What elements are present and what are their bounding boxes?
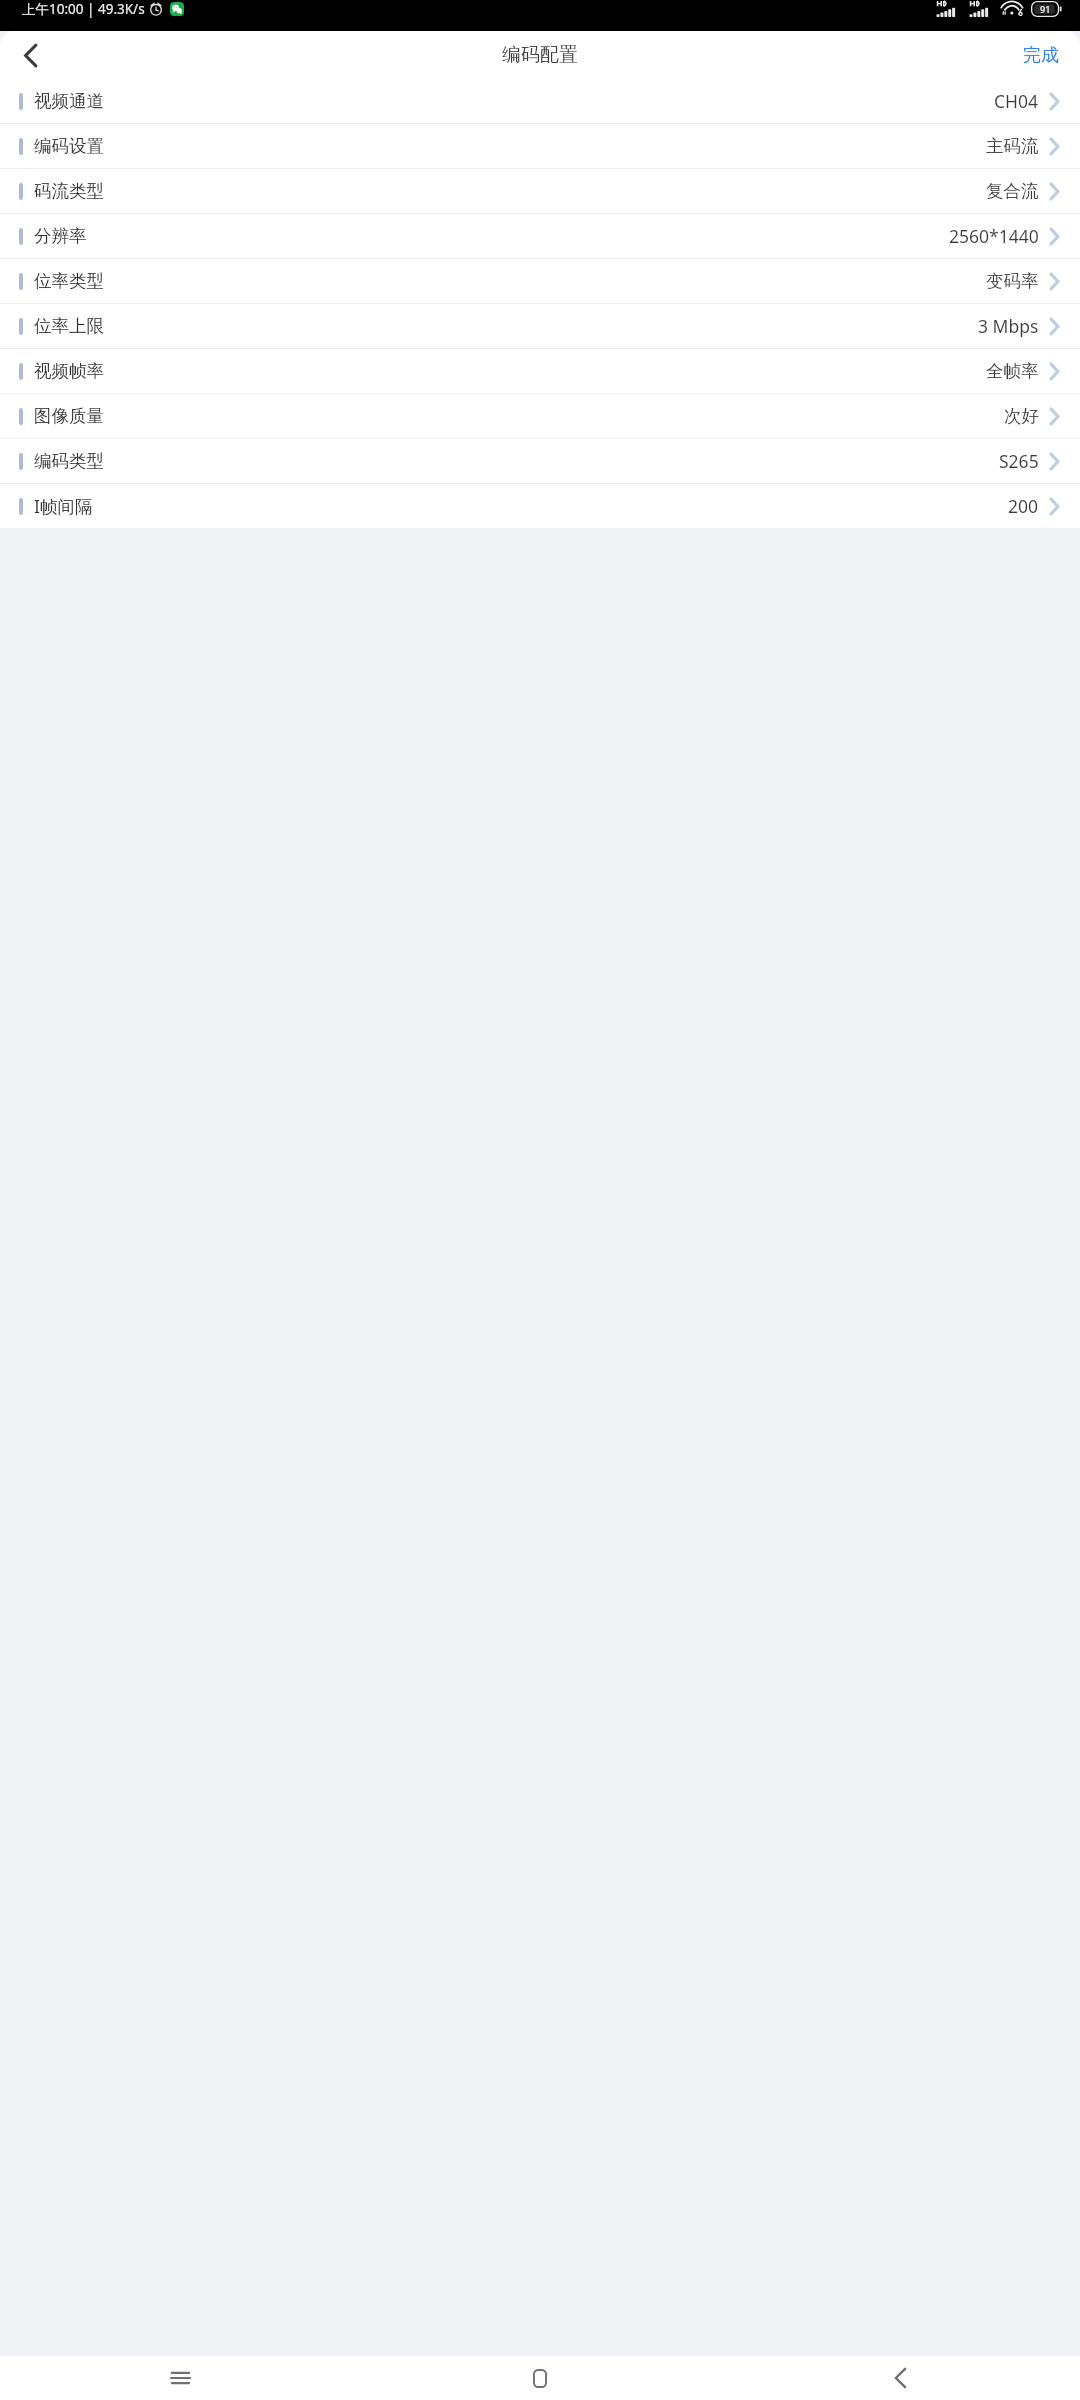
staticText: 图像质量 xyxy=(34,405,104,427)
staticText: S265 xyxy=(999,449,1039,473)
staticText: 码流类型 xyxy=(34,180,104,202)
staticText: I帧间隔 xyxy=(34,494,93,518)
staticText: 变码率 xyxy=(986,270,1039,292)
staticText: 全帧率 xyxy=(986,360,1039,382)
button[interactable]: Back xyxy=(0,31,60,79)
button[interactable]: 视频通道 xyxy=(0,79,1080,123)
button[interactable]: Back xyxy=(720,2356,1080,2400)
staticText: 视频帧率 xyxy=(34,360,104,382)
staticText: 编码配置 xyxy=(502,43,578,67)
button[interactable]: 位率类型 xyxy=(0,259,1080,303)
button[interactable]: 视频帧率 xyxy=(0,349,1080,393)
staticText: 分辨率 xyxy=(34,225,87,247)
button[interactable]: 分辨率 xyxy=(0,214,1080,258)
staticText: CH04 xyxy=(994,89,1039,113)
staticText: 复合流 xyxy=(986,180,1039,202)
staticText: 2560*1440 xyxy=(949,224,1039,248)
staticText: 次好 xyxy=(1004,405,1039,427)
staticText: 完成 xyxy=(1023,44,1059,67)
button[interactable]: 位率上限 xyxy=(0,304,1080,348)
staticText: 200 xyxy=(1008,494,1039,518)
staticText: 视频通道 xyxy=(34,90,104,112)
button[interactable]: 码流类型 xyxy=(0,169,1080,213)
button[interactable]: 编码类型 xyxy=(0,439,1080,483)
button[interactable]: I帧间隔 xyxy=(0,484,1080,528)
staticText: 上午10:00 | 49.3K/s xyxy=(22,0,145,18)
button[interactable]: 完成 xyxy=(1002,31,1080,79)
button[interactable]: 编码设置 xyxy=(0,124,1080,168)
staticText: 位率类型 xyxy=(34,270,104,292)
staticText: 编码类型 xyxy=(34,450,104,472)
button[interactable]: Home xyxy=(360,2356,720,2400)
staticText: 3 Mbps xyxy=(978,314,1039,338)
staticText: 位率上限 xyxy=(34,315,104,337)
button[interactable]: 图像质量 xyxy=(0,394,1080,438)
staticText: 91 xyxy=(1040,3,1051,15)
button[interactable]: Recents xyxy=(0,2356,360,2400)
staticText: 编码设置 xyxy=(34,135,104,157)
staticText: 主码流 xyxy=(986,135,1039,157)
